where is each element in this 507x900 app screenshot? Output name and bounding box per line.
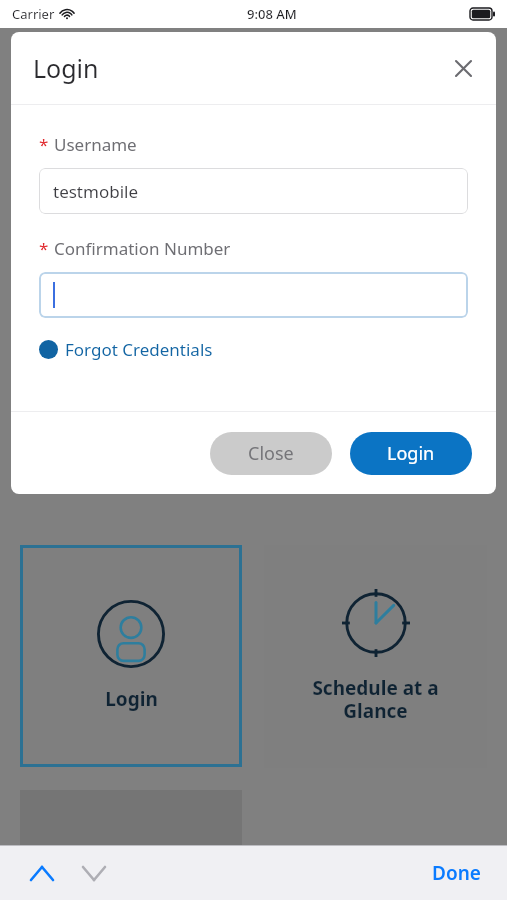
button[interactable]: Schedule at a Glance [264,545,487,768]
staticText: Login [105,686,158,712]
button[interactable]: Done [426,852,487,894]
staticText: Forgot Credentials [65,338,213,361]
button[interactable]: Next field [72,851,116,895]
button[interactable]: Login [350,432,472,475]
button[interactable]: Previous field [20,851,64,895]
staticText: Done [432,860,481,886]
button[interactable] [39,272,468,318]
button[interactable]: Close [444,49,482,87]
staticText: 9:08 AM [247,5,297,23]
staticText: * [39,133,49,156]
staticText: Username [54,133,137,156]
button[interactable] [20,790,242,850]
staticText: testmobile [53,180,138,203]
staticText: Carrier [12,5,55,23]
staticText: Login [387,441,435,466]
staticText: * [39,237,49,260]
staticText: Login [33,51,99,85]
staticText: Schedule at a Glance [312,675,439,724]
staticText: Confirmation Number [54,237,231,260]
button[interactable]: Login [20,545,242,767]
button[interactable]: Close [210,432,332,475]
button[interactable]: Forgot Credentials [39,338,213,361]
button[interactable]: testmobile [39,168,468,214]
staticText: Close [248,441,294,466]
